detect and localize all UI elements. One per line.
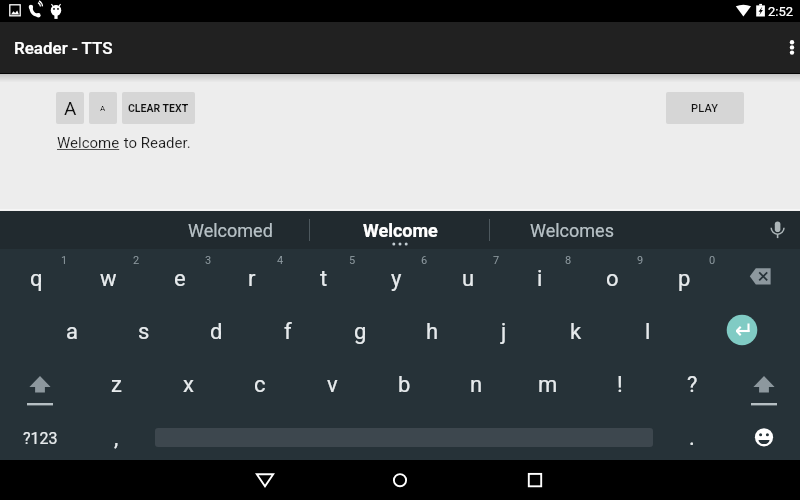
button[interactable]: x <box>152 359 224 411</box>
staticText: r <box>248 266 256 292</box>
button[interactable]: Shift <box>4 368 76 420</box>
staticText: x <box>183 372 194 398</box>
staticText: ?123 <box>23 429 58 448</box>
staticText: h <box>426 319 439 345</box>
staticText: . <box>689 425 695 451</box>
staticText: f <box>284 319 292 345</box>
button[interactable]: Backspace <box>724 250 796 302</box>
button[interactable]: b <box>368 359 440 411</box>
button[interactable]: u <box>432 253 504 305</box>
button[interactable]: Welcomes <box>491 211 653 249</box>
staticText: m <box>538 372 558 398</box>
staticText: Welcome <box>57 134 120 152</box>
staticText: CLEAR TEXT <box>128 102 189 114</box>
staticText: to Reader. <box>120 134 191 152</box>
staticText: n <box>470 372 483 398</box>
staticText: 9 <box>637 254 644 267</box>
button[interactable]: CLEAR TEXT <box>122 92 195 124</box>
staticText: j <box>501 319 507 345</box>
staticText: b <box>398 372 411 398</box>
staticText: Welcome <box>363 220 438 241</box>
button[interactable]: w <box>72 253 144 305</box>
button[interactable]: , <box>80 412 152 464</box>
staticText: 0 <box>709 254 716 267</box>
staticText: q <box>30 266 43 292</box>
button[interactable]: ?123 <box>4 412 76 464</box>
button[interactable]: g <box>324 306 396 358</box>
button[interactable]: p <box>648 253 720 305</box>
button[interactable]: m <box>512 359 584 411</box>
button[interactable]: v <box>296 359 368 411</box>
staticText: ? <box>687 372 698 398</box>
button[interactable]: r <box>216 253 288 305</box>
staticText: l <box>645 319 651 345</box>
staticText: a <box>66 319 78 345</box>
button[interactable]: ? <box>656 359 728 411</box>
button[interactable]: h <box>396 306 468 358</box>
staticText: , <box>114 425 119 451</box>
staticText: v <box>327 372 338 398</box>
button[interactable]: Back <box>235 460 295 500</box>
staticText: A <box>100 104 106 113</box>
button[interactable]: c <box>224 359 296 411</box>
button[interactable]: Welcomed <box>155 211 305 249</box>
staticText: 5 <box>349 254 356 267</box>
button[interactable]: o <box>576 253 648 305</box>
staticText: w <box>100 266 117 292</box>
button[interactable]: s <box>108 306 180 358</box>
button[interactable]: k <box>540 306 612 358</box>
button[interactable]: ! <box>584 359 656 411</box>
button[interactable]: f <box>252 306 324 358</box>
button[interactable]: d <box>180 306 252 358</box>
button[interactable]: n <box>440 359 512 411</box>
button[interactable]: PLAY <box>666 92 744 124</box>
button[interactable]: Welcome <box>310 211 490 249</box>
button[interactable]: y <box>360 253 432 305</box>
staticText: t <box>320 266 328 292</box>
staticText: A <box>64 97 77 119</box>
staticText: 6 <box>421 254 428 267</box>
staticText: k <box>570 319 582 345</box>
button[interactable]: More options <box>756 22 800 73</box>
staticText: s <box>138 319 150 345</box>
staticText: u <box>462 266 475 292</box>
staticText: p <box>678 266 691 292</box>
button[interactable]: Emoji <box>728 412 800 464</box>
button[interactable]: Recents <box>505 460 565 500</box>
button[interactable]: e <box>144 253 216 305</box>
button[interactable]: Voice input <box>761 214 793 242</box>
staticText: z <box>111 372 122 398</box>
button[interactable]: . <box>656 412 728 464</box>
staticText: ! <box>617 372 623 398</box>
staticText: 7 <box>493 254 500 267</box>
button[interactable]: l <box>612 306 684 358</box>
staticText: i <box>537 266 543 292</box>
staticText: o <box>606 266 619 292</box>
button[interactable]: i <box>504 253 576 305</box>
staticText: 1 <box>61 254 68 267</box>
button[interactable]: Smaller text <box>89 92 117 124</box>
staticText: g <box>354 319 367 345</box>
staticText: 8 <box>565 254 572 267</box>
staticText: d <box>210 319 223 345</box>
staticText: 3 <box>205 254 212 267</box>
staticText: e <box>174 266 186 292</box>
button[interactable]: t <box>288 253 360 305</box>
button[interactable]: Home <box>370 460 430 500</box>
staticText: Reader - TTS <box>14 38 113 58</box>
button[interactable]: a <box>36 306 108 358</box>
staticText: PLAY <box>691 102 719 115</box>
button[interactable]: Shift <box>728 368 800 420</box>
staticText: Welcomed <box>188 220 273 241</box>
button[interactable]: j <box>468 306 540 358</box>
staticText: 2:52 <box>768 4 794 19</box>
staticText: c <box>254 372 266 398</box>
button[interactable]: z <box>80 359 152 411</box>
staticText: 2 <box>133 254 140 267</box>
button[interactable]: q <box>0 253 72 305</box>
button[interactable]: Bigger text <box>56 92 84 124</box>
staticText: 4 <box>277 254 284 267</box>
button[interactable]: Enter <box>706 304 778 356</box>
staticText: y <box>391 266 402 292</box>
